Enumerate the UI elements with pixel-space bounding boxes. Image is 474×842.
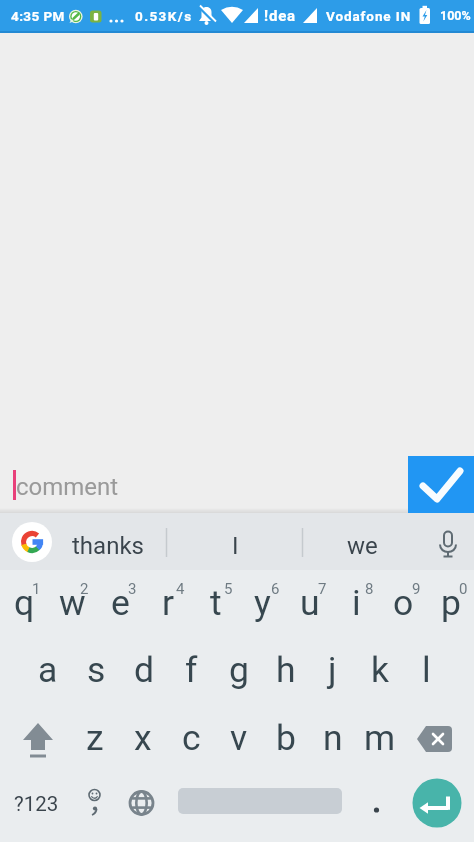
staticText: x: [134, 717, 152, 759]
button[interactable]: [424, 513, 474, 570]
button[interactable]: d: [120, 638, 168, 706]
button[interactable]: x: [119, 706, 167, 774]
staticText: h: [276, 649, 296, 691]
button[interactable]: e: [96, 570, 144, 638]
staticText: 1: [32, 580, 41, 598]
button[interactable]: w: [48, 570, 96, 638]
staticText: d: [134, 649, 155, 691]
staticText: 0: [459, 580, 468, 598]
button[interactable]: i: [333, 570, 380, 638]
staticText: z: [86, 717, 104, 759]
staticText: !dea: [264, 7, 296, 25]
button[interactable]: a: [24, 638, 72, 706]
staticText: w: [59, 582, 86, 624]
button[interactable]: [355, 774, 402, 842]
button[interactable]: comment: [0, 456, 474, 513]
staticText: 7: [318, 580, 327, 598]
staticText: f: [185, 649, 198, 691]
staticText: k: [371, 649, 389, 691]
button[interactable]: [408, 456, 474, 513]
button[interactable]: s: [72, 638, 120, 706]
button[interactable]: [165, 774, 355, 842]
staticText: Vodafone IN: [326, 8, 412, 24]
staticText: 3: [128, 580, 137, 598]
button[interactable]: g: [215, 638, 262, 706]
button[interactable]: h: [262, 638, 309, 706]
button[interactable]: [71, 774, 118, 842]
button[interactable]: p: [427, 570, 474, 638]
button[interactable]: ?123: [0, 774, 71, 842]
button[interactable]: t: [192, 570, 239, 638]
button[interactable]: j: [309, 638, 356, 706]
staticText: 8: [365, 580, 374, 598]
staticText: 2: [80, 580, 89, 598]
button[interactable]: r: [144, 570, 192, 638]
button[interactable]: v: [215, 706, 262, 774]
button[interactable]: thanks: [55, 517, 160, 574]
button[interactable]: f: [168, 638, 215, 706]
staticText: comment: [16, 473, 119, 501]
staticText: we: [347, 532, 378, 560]
staticText: v: [230, 717, 248, 759]
staticText: ?123: [14, 792, 59, 816]
button[interactable]: k: [356, 638, 403, 706]
button[interactable]: z: [71, 706, 119, 774]
staticText: u: [300, 582, 320, 624]
staticText: 4:35 PM: [11, 8, 65, 24]
staticText: 4: [176, 580, 185, 598]
staticText: e: [111, 582, 130, 624]
staticText: 5: [224, 580, 233, 598]
button[interactable]: q: [0, 570, 48, 638]
staticText: I: [232, 532, 239, 560]
staticText: 6: [271, 580, 280, 598]
button[interactable]: [0, 706, 71, 774]
button[interactable]: I: [167, 517, 303, 574]
staticText: q: [14, 582, 35, 624]
staticText: t: [210, 582, 222, 624]
button[interactable]: [118, 774, 165, 842]
button[interactable]: m: [356, 706, 403, 774]
button[interactable]: o: [380, 570, 427, 638]
button[interactable]: c: [167, 706, 215, 774]
staticText: l: [422, 649, 431, 691]
button[interactable]: n: [309, 706, 356, 774]
staticText: s: [87, 649, 106, 691]
staticText: 9: [412, 580, 421, 598]
staticText: 0.53K/s: [135, 8, 193, 24]
staticText: b: [276, 717, 296, 759]
staticText: 100%: [440, 8, 471, 23]
staticText: m: [364, 717, 396, 759]
staticText: y: [254, 582, 271, 624]
staticText: i: [352, 582, 361, 624]
button[interactable]: y: [239, 570, 286, 638]
button[interactable]: [0, 513, 57, 570]
button[interactable]: l: [403, 638, 450, 706]
staticText: p: [441, 582, 461, 624]
staticText: o: [393, 582, 414, 624]
button[interactable]: [403, 706, 474, 774]
button[interactable]: we: [303, 517, 421, 574]
button[interactable]: u: [286, 570, 333, 638]
staticText: j: [328, 649, 337, 691]
staticText: thanks: [72, 532, 144, 560]
staticText: g: [229, 649, 249, 691]
button[interactable]: [402, 774, 474, 842]
staticText: a: [38, 649, 58, 691]
staticText: c: [182, 717, 201, 759]
staticText: n: [323, 717, 343, 759]
button[interactable]: b: [262, 706, 309, 774]
staticText: r: [162, 582, 175, 624]
